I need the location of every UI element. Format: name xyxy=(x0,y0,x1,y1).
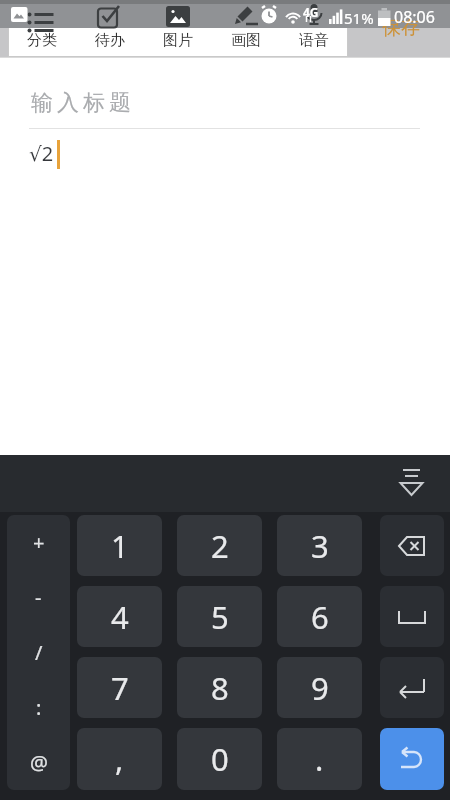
staticText: 图片 xyxy=(163,31,193,50)
button[interactable]: 待办 xyxy=(76,0,144,57)
button[interactable]: 6 xyxy=(277,586,362,647)
staticText: 6 xyxy=(311,596,329,638)
staticText: / xyxy=(35,639,43,666)
button[interactable]: 3 xyxy=(277,515,362,576)
button[interactable]: 0 xyxy=(177,728,262,790)
staticText: @ xyxy=(30,749,48,776)
button[interactable] xyxy=(390,460,435,508)
button[interactable]: 画图 xyxy=(212,0,280,57)
staticText: 待办 xyxy=(95,31,125,50)
button[interactable]: 4 xyxy=(77,586,162,647)
staticText: 0 xyxy=(211,738,229,780)
staticText: 语音 xyxy=(299,31,329,50)
button[interactable]: 分类 xyxy=(8,0,76,57)
staticText: 1 xyxy=(111,525,129,567)
staticText: 4 xyxy=(111,596,129,638)
staticText: - xyxy=(35,584,42,611)
staticText: 7 xyxy=(111,667,129,709)
button[interactable] xyxy=(380,657,444,718)
button[interactable]: : xyxy=(7,680,70,735)
staticText: 9 xyxy=(311,667,329,709)
staticText: . xyxy=(315,738,324,780)
button[interactable]: 5 xyxy=(177,586,262,647)
button[interactable]: / xyxy=(7,625,70,680)
staticText: 保存 xyxy=(382,16,420,40)
staticText: √2 xyxy=(29,140,54,167)
staticText: 51% xyxy=(344,8,374,28)
button[interactable]: , xyxy=(77,728,162,790)
staticText: 3 xyxy=(311,525,329,567)
button[interactable]: 保存 xyxy=(366,8,436,48)
button[interactable]: 8 xyxy=(177,657,262,718)
button[interactable]: + xyxy=(7,515,70,570)
button[interactable]: - xyxy=(7,570,70,625)
button[interactable] xyxy=(380,728,444,790)
button[interactable]: 2 xyxy=(177,515,262,576)
button[interactable]: 7 xyxy=(77,657,162,718)
button[interactable]: 语音 xyxy=(280,0,348,57)
staticText: 分类 xyxy=(27,31,57,50)
button[interactable]: 9 xyxy=(277,657,362,718)
staticText: 画图 xyxy=(231,31,261,50)
staticText: + xyxy=(33,529,45,556)
staticText: 输入标题 xyxy=(29,89,133,117)
staticText: 2 xyxy=(211,525,229,567)
staticText: 8 xyxy=(211,667,229,709)
staticText: 4G xyxy=(303,4,319,20)
button[interactable]: @ xyxy=(7,735,70,790)
staticText: : xyxy=(36,694,42,721)
button[interactable]: 1 xyxy=(77,515,162,576)
staticText: , xyxy=(115,738,124,780)
staticText: 08:06 xyxy=(394,6,435,28)
staticText: 5 xyxy=(211,596,229,638)
button[interactable] xyxy=(380,515,444,576)
button[interactable]: 图片 xyxy=(144,0,212,57)
button[interactable]: . xyxy=(277,728,362,790)
button[interactable] xyxy=(380,586,444,647)
